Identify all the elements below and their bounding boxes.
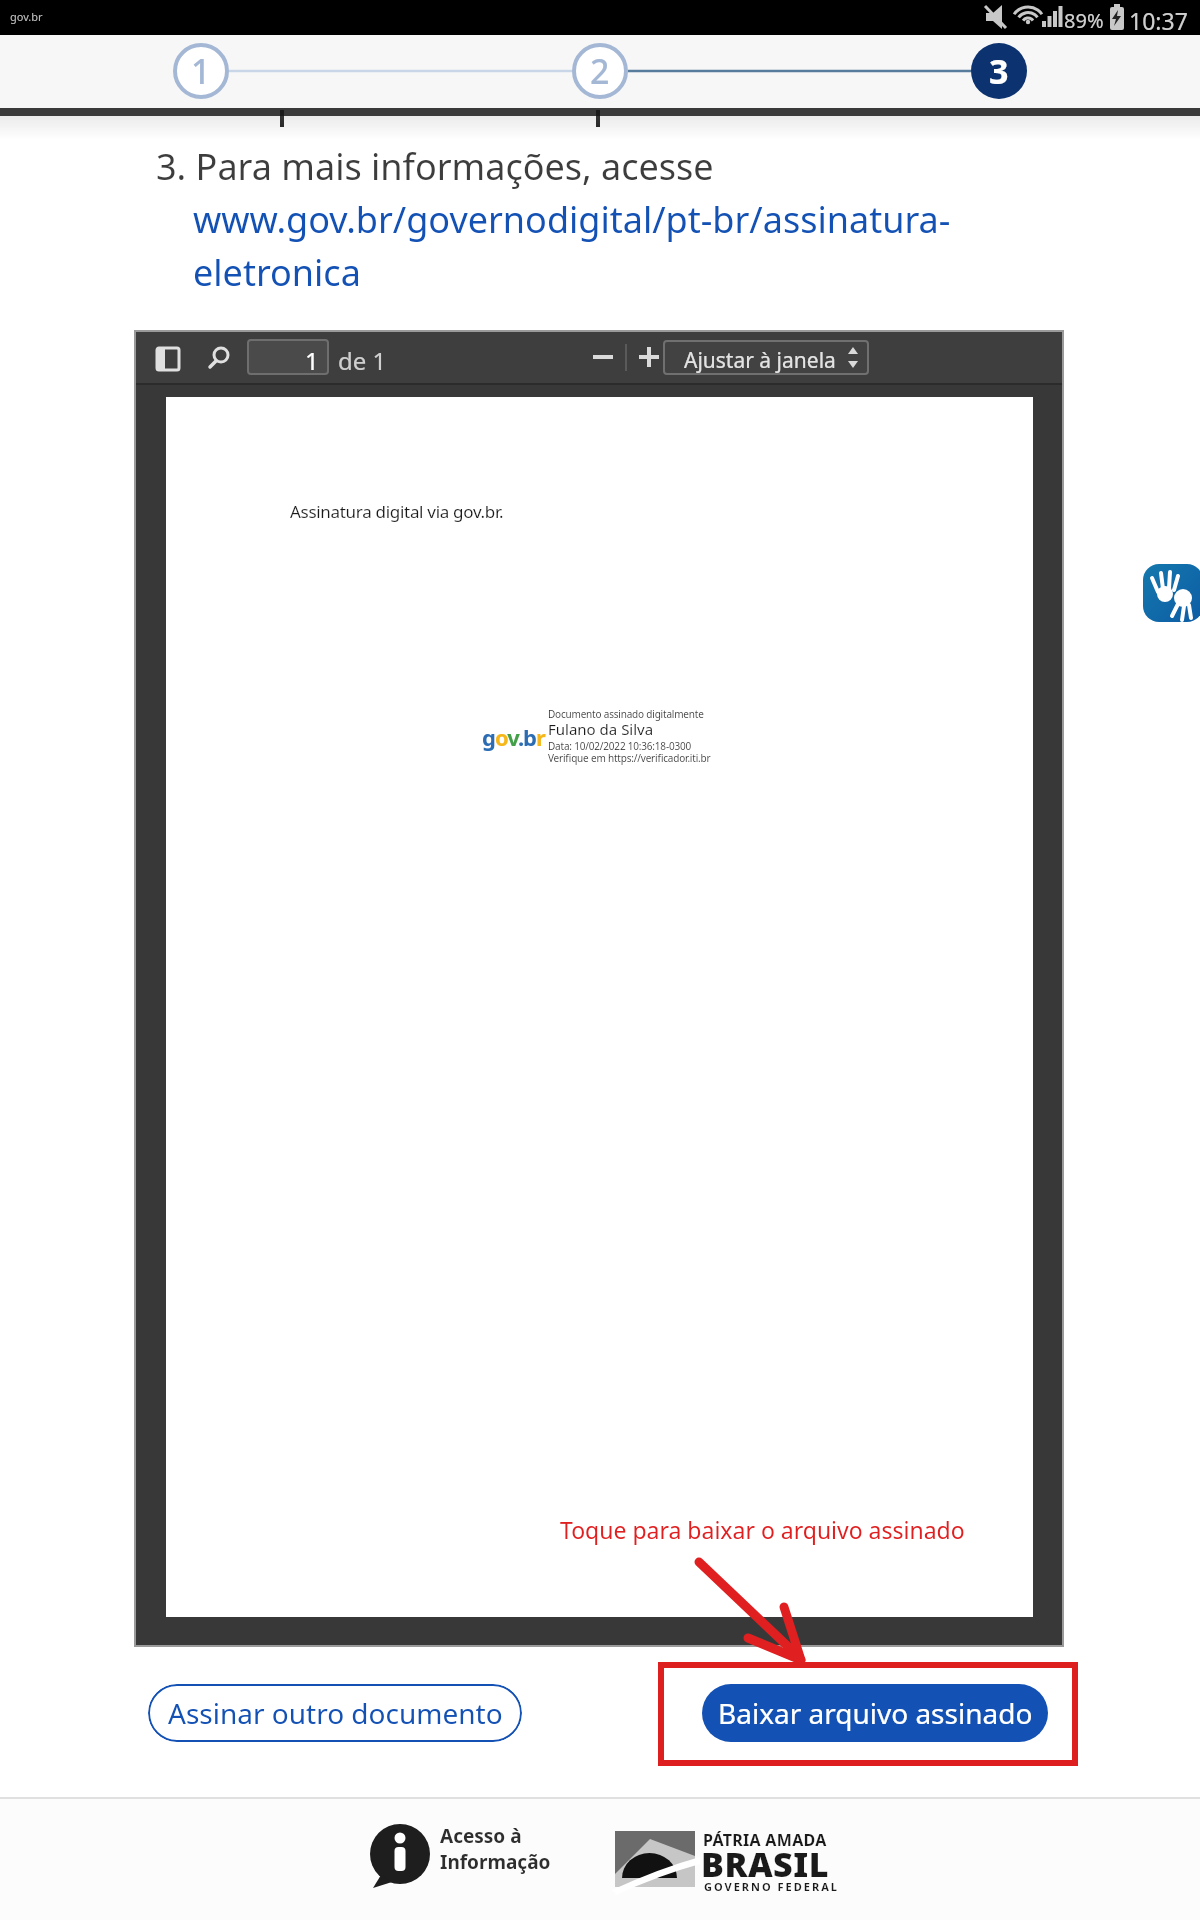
staticText: gov.br <box>482 722 545 752</box>
staticText: 1 <box>191 48 211 94</box>
staticText: Documento assinado digitalmente <box>548 707 704 721</box>
staticText: Acesso à <box>440 1823 522 1849</box>
staticText: 89% <box>1064 7 1104 34</box>
staticText: Data: 10/02/2022 10:36:18-0300 <box>548 739 691 753</box>
staticText: BRASIL <box>701 1841 829 1887</box>
staticText: 10:37 <box>1129 5 1188 36</box>
button[interactable]: Baixar arquivo assinado <box>702 1684 1048 1742</box>
button[interactable] <box>1143 564 1200 622</box>
staticText: 1 <box>305 344 319 377</box>
staticText: Assinar outro documento <box>168 1694 503 1732</box>
staticText: Assinatura digital via gov.br. <box>290 500 504 523</box>
staticText: PÁTRIA AMADA <box>703 1829 827 1851</box>
staticText: 3. Para mais informações, acesse <box>156 142 714 191</box>
staticText: Toque para baixar o arquivo assinado <box>560 1514 965 1545</box>
staticText: gov.br <box>10 9 43 24</box>
button[interactable]: www.gov.br/governodigital/pt-br/assinatu… <box>0 0 758 49</box>
button[interactable]: eletronica <box>0 0 168 49</box>
staticText: 2 <box>590 48 610 94</box>
staticText: Verifique em https://verificador.iti.br <box>548 751 711 765</box>
staticText: Baixar arquivo assinado <box>718 1694 1033 1732</box>
button[interactable]: Assinar outro documento <box>148 1684 522 1742</box>
staticText: Fulano da Silva <box>548 719 654 739</box>
staticText: Ajustar à janela <box>684 346 836 375</box>
staticText: GOVERNO FEDERAL <box>704 1879 839 1894</box>
staticText: 3 <box>989 48 1009 94</box>
staticText: Informação <box>440 1849 551 1875</box>
staticText: de 1 <box>338 344 387 377</box>
